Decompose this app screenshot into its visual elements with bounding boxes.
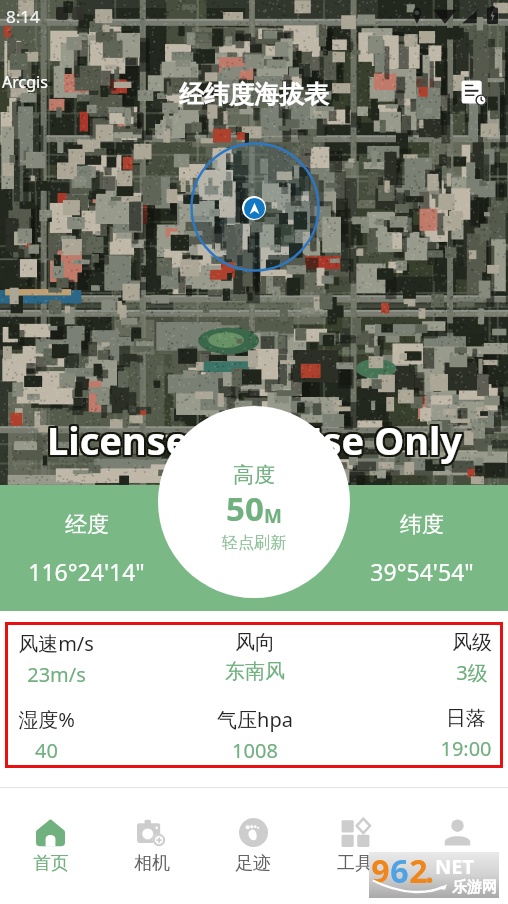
staticText: 我的 [439,852,475,875]
staticText: 6 [390,849,409,893]
staticText: Licensed For Use Only [48,415,463,467]
staticText: 湿度% [18,706,75,733]
staticText: 相机 [134,852,170,875]
staticText: 高度 [233,462,275,488]
staticText: Licensed For Use Only [48,413,463,465]
staticText: 气压hpa [217,706,293,733]
staticText: Licensed For Use Only [49,415,464,467]
button[interactable]: 相机 [101,818,202,875]
staticText: 116°24'14" [28,556,145,587]
button[interactable]: 工具 [304,818,406,875]
staticText: 8:14 [6,5,40,28]
staticText: Licensed For Use Only [49,416,464,468]
staticText: Licensed For Use Only [47,413,462,465]
staticText: Licensed For Use Only [45,412,460,464]
staticText: 东南风 [225,659,285,684]
staticText: 工具 [337,852,373,875]
button[interactable]: 足迹 [202,818,304,875]
staticText: Licensed For Use Only [49,414,464,466]
staticText: NET [435,853,474,880]
staticText: Licensed For Use Only [49,412,464,464]
staticText: Licensed For Use Only [49,413,464,465]
staticText: 经纬度海拔表 [179,79,329,110]
staticText: Licensed For Use Only [47,415,462,467]
staticText: 2 [409,849,428,893]
staticText: Licensed For Use Only [48,416,463,468]
staticText: 1008 [232,737,278,764]
button[interactable]: History [455,74,495,114]
button[interactable]: 高度 [158,406,350,598]
staticText: 19:00 [440,735,492,762]
staticText: Licensed For Use Only [47,412,462,464]
staticText: Licensed For Use Only [48,414,463,466]
staticText: 足迹 [235,852,271,875]
staticText: 23m/s [27,661,86,688]
staticText: 50 [226,486,264,531]
staticText: 日落 [446,706,486,731]
staticText: 40 [35,737,58,764]
staticText: Licensed For Use Only [45,413,460,465]
staticText: 3级 [456,659,488,686]
staticText: 经度 [65,511,109,539]
button[interactable]: 我的 [406,818,508,875]
staticText: Licensed For Use Only [46,415,461,467]
staticText: Licensed For Use Only [45,414,460,466]
staticText: Licensed For Use Only [46,413,461,465]
staticText: Arcgis [2,71,48,93]
staticText: 首页 [33,852,69,875]
staticText: 乐游网 [452,878,497,897]
staticText: M [264,503,282,529]
staticText: Licensed For Use Only [47,416,462,468]
staticText: 风速m/s [18,630,94,657]
staticText: 39°54'54" [370,556,474,587]
staticText: 9 [371,849,390,893]
staticText: . [425,849,434,893]
staticText: Licensed For Use Only [45,415,460,467]
staticText: Licensed For Use Only [46,414,461,466]
staticText: 纬度 [400,511,444,539]
staticText: 风级 [452,630,492,655]
staticText: Licensed For Use Only [46,416,461,468]
staticText: 风向 [235,630,275,655]
staticText: Licensed For Use Only [45,416,460,468]
staticText: 轻点刷新 [222,533,286,553]
staticText: Licensed For Use Only [47,414,462,466]
staticText: Licensed For Use Only [48,412,463,464]
staticText: Licensed For Use Only [46,412,461,464]
button[interactable]: 首页 [0,818,101,875]
